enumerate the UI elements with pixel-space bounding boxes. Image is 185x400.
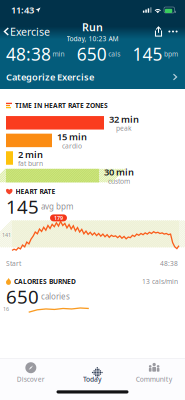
button[interactable]: Share bbox=[151, 23, 166, 40]
staticText: 179 bbox=[54, 214, 63, 221]
staticText: Start bbox=[6, 259, 21, 268]
staticText: min bbox=[52, 50, 64, 58]
staticText: 11:43 bbox=[11, 4, 34, 16]
staticText: custom bbox=[108, 177, 130, 185]
button[interactable]: Today bbox=[62, 362, 123, 384]
staticText: avg bpm bbox=[41, 201, 73, 212]
staticText: Exercise bbox=[10, 24, 50, 39]
staticText: 650 bbox=[77, 42, 107, 65]
staticText: 48:38 bbox=[160, 259, 178, 268]
button[interactable]: More options bbox=[166, 26, 180, 36]
staticText: HEART RATE bbox=[15, 187, 55, 196]
staticText: Today, 10:23 AM bbox=[66, 34, 118, 43]
staticText: 2 min bbox=[18, 148, 43, 160]
button[interactable]: Exercise bbox=[0, 20, 50, 43]
staticText: 48:38 bbox=[6, 42, 51, 65]
staticText: fat burn bbox=[18, 159, 43, 168]
staticText: CALORIES BURNED bbox=[14, 277, 76, 286]
staticText: Community bbox=[136, 375, 173, 384]
staticText: cardio bbox=[62, 141, 82, 150]
staticText: peak bbox=[116, 124, 132, 133]
staticText: 15 min bbox=[57, 130, 87, 143]
staticText: calories bbox=[41, 291, 70, 302]
staticText: Today bbox=[83, 375, 102, 384]
button[interactable]: Community bbox=[123, 362, 185, 384]
staticText: cals bbox=[108, 50, 120, 58]
staticText: TIME IN HEART RATE ZONES bbox=[15, 101, 108, 110]
staticText: 32 min bbox=[109, 113, 139, 125]
button[interactable]: Categorize Exercise bbox=[0, 65, 185, 89]
staticText: 650 bbox=[6, 284, 39, 309]
staticText: 13 cals/min bbox=[142, 277, 178, 286]
staticText: bpm bbox=[164, 50, 178, 58]
staticText: Categorize Exercise bbox=[6, 71, 94, 83]
button[interactable]: Discover bbox=[0, 362, 62, 384]
staticText: 30 min bbox=[104, 166, 134, 178]
staticText: 145 bbox=[6, 194, 39, 219]
staticText: Discover bbox=[17, 375, 45, 384]
staticText: 16 bbox=[3, 305, 9, 312]
staticText: 145 bbox=[132, 42, 162, 65]
staticText: Run bbox=[82, 20, 103, 34]
staticText: 141 bbox=[2, 231, 11, 238]
